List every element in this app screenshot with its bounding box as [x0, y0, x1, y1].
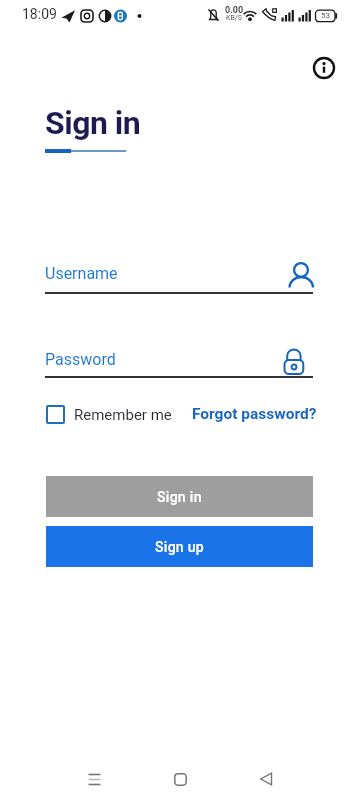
button[interactable]: Forgot password?: [192, 405, 317, 423]
staticText: Sign up: [155, 539, 205, 555]
button[interactable]: Sign up: [46, 526, 313, 567]
staticText: Sign in: [45, 104, 141, 142]
button[interactable]: [304, 48, 344, 88]
staticText: Forgot password?: [192, 405, 317, 423]
staticText: KB/S: [226, 14, 242, 22]
staticText: Password: [45, 350, 116, 369]
button[interactable]: [152, 758, 208, 800]
staticText: 0.00: [225, 5, 244, 16]
button[interactable]: Remember me: [46, 405, 172, 424]
button[interactable]: [66, 758, 122, 800]
staticText: 18:09: [22, 6, 57, 22]
staticText: 53: [321, 11, 330, 20]
button[interactable]: [238, 758, 294, 800]
staticText: Username: [45, 264, 118, 283]
button[interactable]: Sign in: [46, 476, 313, 517]
staticText: Remember me: [74, 406, 172, 424]
staticText: Sign in: [157, 489, 202, 505]
